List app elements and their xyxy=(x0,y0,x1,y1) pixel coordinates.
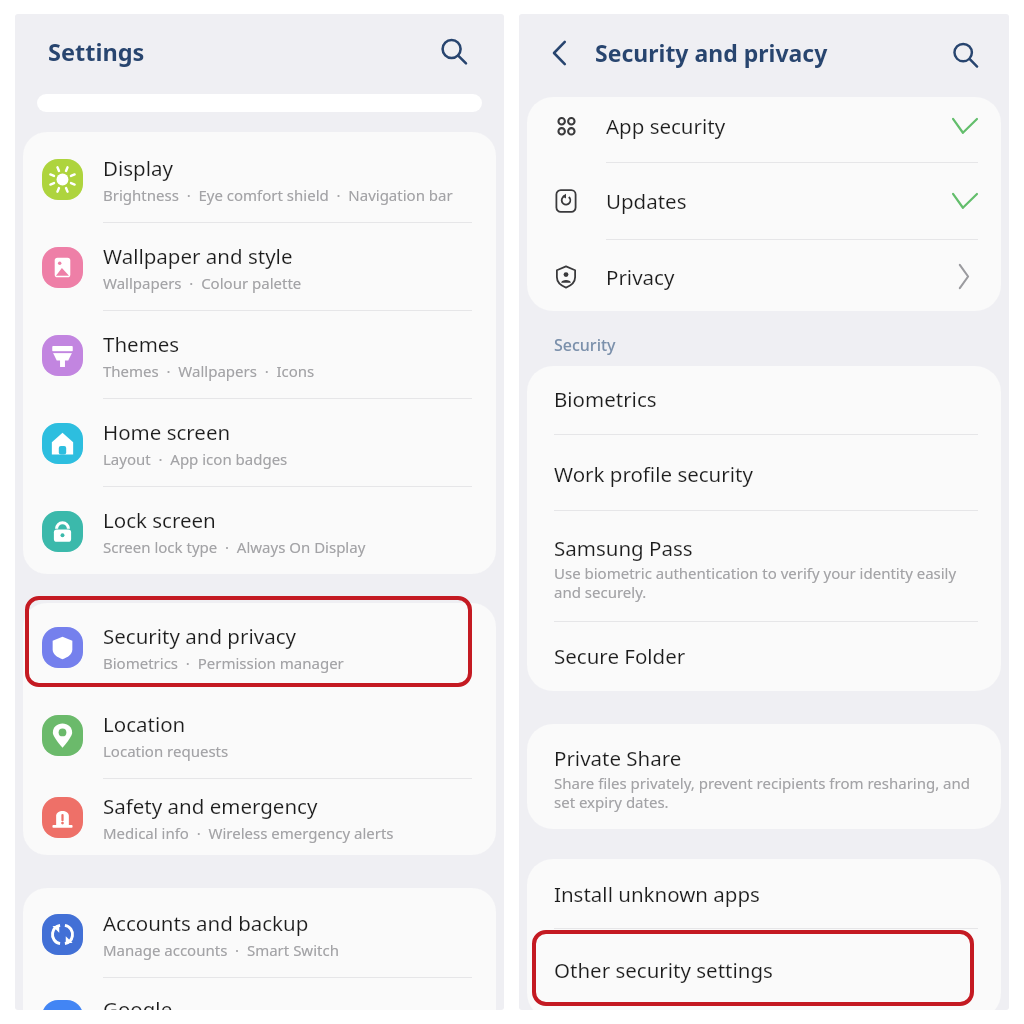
button[interactable]: Samsung Pass xyxy=(527,511,1001,622)
button[interactable]: Biometrics xyxy=(527,366,1001,435)
staticText: Safety and emergency xyxy=(103,792,318,820)
staticText: Location xyxy=(103,710,186,738)
staticText: Themes · Wallpapers · Icons xyxy=(103,361,315,381)
button[interactable]: Install unknown apps xyxy=(527,859,1001,929)
button[interactable]: App security xyxy=(527,97,1001,163)
button[interactable]: Search xyxy=(431,29,477,75)
staticText: Work profile security xyxy=(554,460,753,488)
button[interactable]: Display xyxy=(23,135,496,223)
staticText: Lock screen xyxy=(103,506,216,534)
staticText: Wallpaper and style xyxy=(103,242,293,270)
staticText: Biometrics xyxy=(554,385,657,413)
staticText: Wallpapers · Colour palette xyxy=(103,273,302,293)
button[interactable]: Work profile security xyxy=(527,435,1001,511)
staticText: Samsung Pass xyxy=(554,534,693,562)
staticText: Display xyxy=(103,154,173,182)
button[interactable]: Safety and emergency xyxy=(23,779,496,855)
staticText: Secure Folder xyxy=(554,642,686,670)
staticText: Themes xyxy=(103,330,180,358)
button[interactable]: Accounts and backup xyxy=(23,890,496,978)
staticText: Security and privacy xyxy=(595,37,828,68)
staticText: Medical info · Wireless emergency alerts xyxy=(103,823,394,843)
staticText: Location requests xyxy=(103,741,229,761)
staticText: Brightness · Eye comfort shield · Naviga… xyxy=(103,185,453,205)
staticText: Screen lock type · Always On Display xyxy=(103,537,366,557)
staticText: Biometrics · Permission manager xyxy=(103,653,344,673)
staticText: Install unknown apps xyxy=(554,880,760,908)
staticText: Home screen xyxy=(103,418,231,446)
staticText: Accounts and backup xyxy=(103,909,309,937)
button[interactable]: Other security settings xyxy=(527,929,1001,1009)
staticText: Private Share xyxy=(554,744,682,772)
button[interactable]: Security and privacy xyxy=(23,603,496,691)
staticText: Security xyxy=(554,334,616,356)
button[interactable]: Lock screen xyxy=(23,487,496,574)
button[interactable]: Google xyxy=(23,990,496,1010)
staticText: Security and privacy xyxy=(103,622,296,650)
button[interactable]: Updates xyxy=(527,163,1001,240)
staticText: Manage accounts · Smart Switch xyxy=(103,940,339,960)
button[interactable]: Private Share xyxy=(527,724,1001,829)
staticText: Settings xyxy=(48,36,145,68)
staticText: Google xyxy=(103,995,173,1010)
staticText: App security xyxy=(606,112,726,140)
staticText: Updates xyxy=(606,187,687,215)
button[interactable]: Secure Folder xyxy=(527,622,1001,691)
button[interactable]: Wallpaper and style xyxy=(23,223,496,311)
staticText: Privacy xyxy=(606,263,675,291)
button[interactable]: Back xyxy=(538,31,582,75)
button[interactable]: Search xyxy=(942,32,988,78)
staticText: Share files privately, prevent recipient… xyxy=(554,773,978,813)
button[interactable]: Location xyxy=(23,691,496,779)
button[interactable]: Themes xyxy=(23,311,496,399)
staticText: Layout · App icon badges xyxy=(103,449,288,469)
button[interactable]: Home screen xyxy=(23,399,496,487)
staticText: Other security settings xyxy=(554,956,773,984)
button[interactable]: Security and privacy xyxy=(595,29,828,75)
button[interactable]: Privacy xyxy=(527,240,1001,311)
staticText: Use biometric authentication to verify y… xyxy=(554,563,978,603)
